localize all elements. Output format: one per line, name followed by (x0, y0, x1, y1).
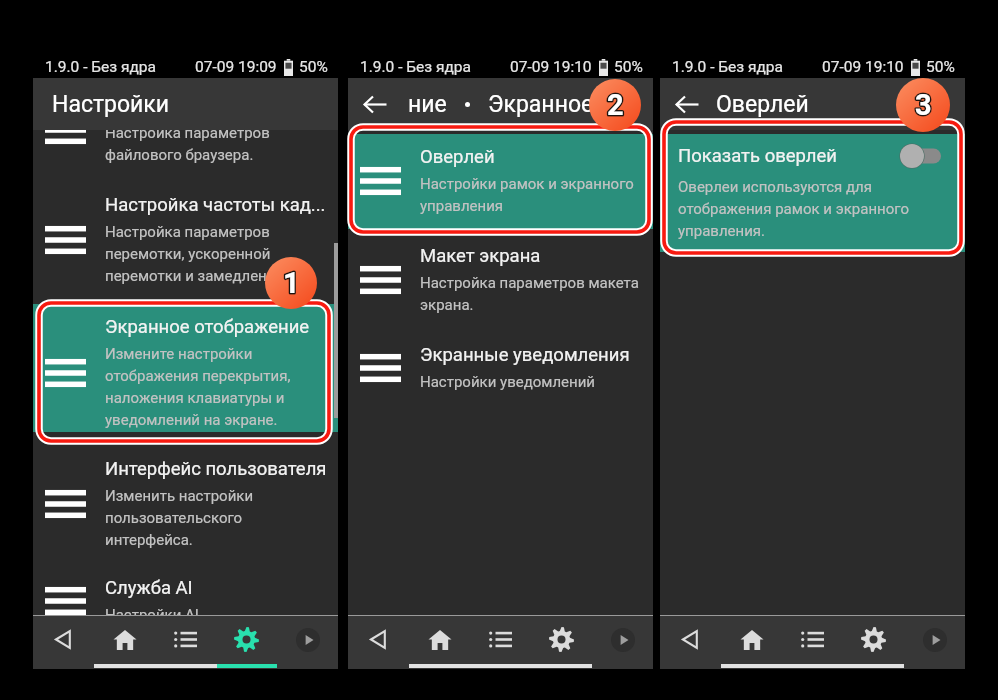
staticText: Экранные уведомления (420, 344, 630, 366)
button[interactable]: Макет экрана (348, 245, 653, 315)
staticText: Оверлей (716, 91, 809, 118)
staticText: Настройка параметров файлового браузера. (105, 130, 270, 165)
button[interactable]: Оверлей (348, 134, 653, 229)
staticText: Настройки рамок и экранного управления (420, 172, 634, 216)
staticText: ние (408, 91, 447, 118)
button[interactable]: Back (660, 616, 721, 663)
staticText: 07-09 19:09 (195, 58, 277, 76)
staticText: Измените настройки отображения перекрыти… (105, 342, 291, 430)
button[interactable]: Home (94, 616, 155, 663)
button[interactable]: Settings (531, 616, 592, 663)
staticText: Настройка параметров перемотки, ускоренн… (105, 220, 276, 286)
button[interactable]: Home (721, 616, 782, 663)
button[interactable]: Play (592, 616, 653, 663)
staticText: Настройки AI (105, 603, 199, 615)
button[interactable]: List (155, 616, 216, 663)
staticText: Изменить настройки пользовательского инт… (105, 484, 254, 550)
button[interactable]: Back (348, 616, 409, 663)
staticText: 3 (915, 88, 932, 122)
staticText: Оверлеи используются для отображения рам… (678, 175, 909, 241)
staticText: Макет экрана (420, 245, 541, 267)
staticText: Настройка параметров макета экрана. (420, 271, 639, 315)
button[interactable]: Служба AI (33, 577, 338, 615)
staticText: 1.9.0 - Без ядра (45, 58, 156, 76)
staticText: 50% (926, 58, 955, 76)
staticText: 50% (614, 58, 643, 76)
button[interactable]: Back (33, 616, 94, 663)
button[interactable]: Экранное отображение (33, 304, 338, 432)
staticText: 2 (607, 88, 624, 122)
button[interactable]: Play (904, 616, 965, 663)
button[interactable]: Home (409, 616, 470, 663)
button[interactable]: List (470, 616, 531, 663)
staticText: Оверлей (420, 146, 495, 168)
button[interactable]: Экранные уведомления (348, 344, 653, 392)
staticText: 07-09 19:10 (510, 58, 592, 76)
button[interactable]: Интерфейс пользователя (33, 458, 338, 550)
staticText: Настройки уведомлений (420, 370, 595, 392)
button[interactable]: Показать оверлей (660, 134, 965, 252)
staticText: 1 (283, 266, 300, 300)
staticText: Настройки (52, 91, 170, 118)
staticText: 50% (299, 58, 328, 76)
button[interactable]: List (782, 616, 843, 663)
staticText: 2 (607, 88, 624, 122)
staticText: Служба AI (105, 577, 193, 599)
button[interactable]: Settings (843, 616, 904, 663)
staticText: Экранное отображение (105, 316, 310, 338)
staticText: 1.9.0 - Без ядра (672, 58, 783, 76)
staticText: 07-09 19:10 (822, 58, 904, 76)
button[interactable]: Настройка частоты кад... (33, 194, 338, 286)
button[interactable]: Back (363, 92, 388, 117)
staticText: Интерфейс пользователя (105, 458, 327, 480)
button[interactable]: Настройка файлов (33, 130, 338, 165)
staticText: Настройка частоты кад... (105, 194, 326, 216)
staticText: 1.9.0 - Без ядра (360, 58, 471, 76)
staticText: 3 (915, 88, 932, 122)
staticText: Показать оверлей (678, 145, 838, 167)
button[interactable]: Back (675, 92, 700, 117)
button[interactable]: Play (277, 616, 338, 663)
staticText: 1 (283, 266, 300, 300)
button[interactable]: Settings (216, 616, 277, 663)
staticText: Экранное (488, 91, 594, 118)
